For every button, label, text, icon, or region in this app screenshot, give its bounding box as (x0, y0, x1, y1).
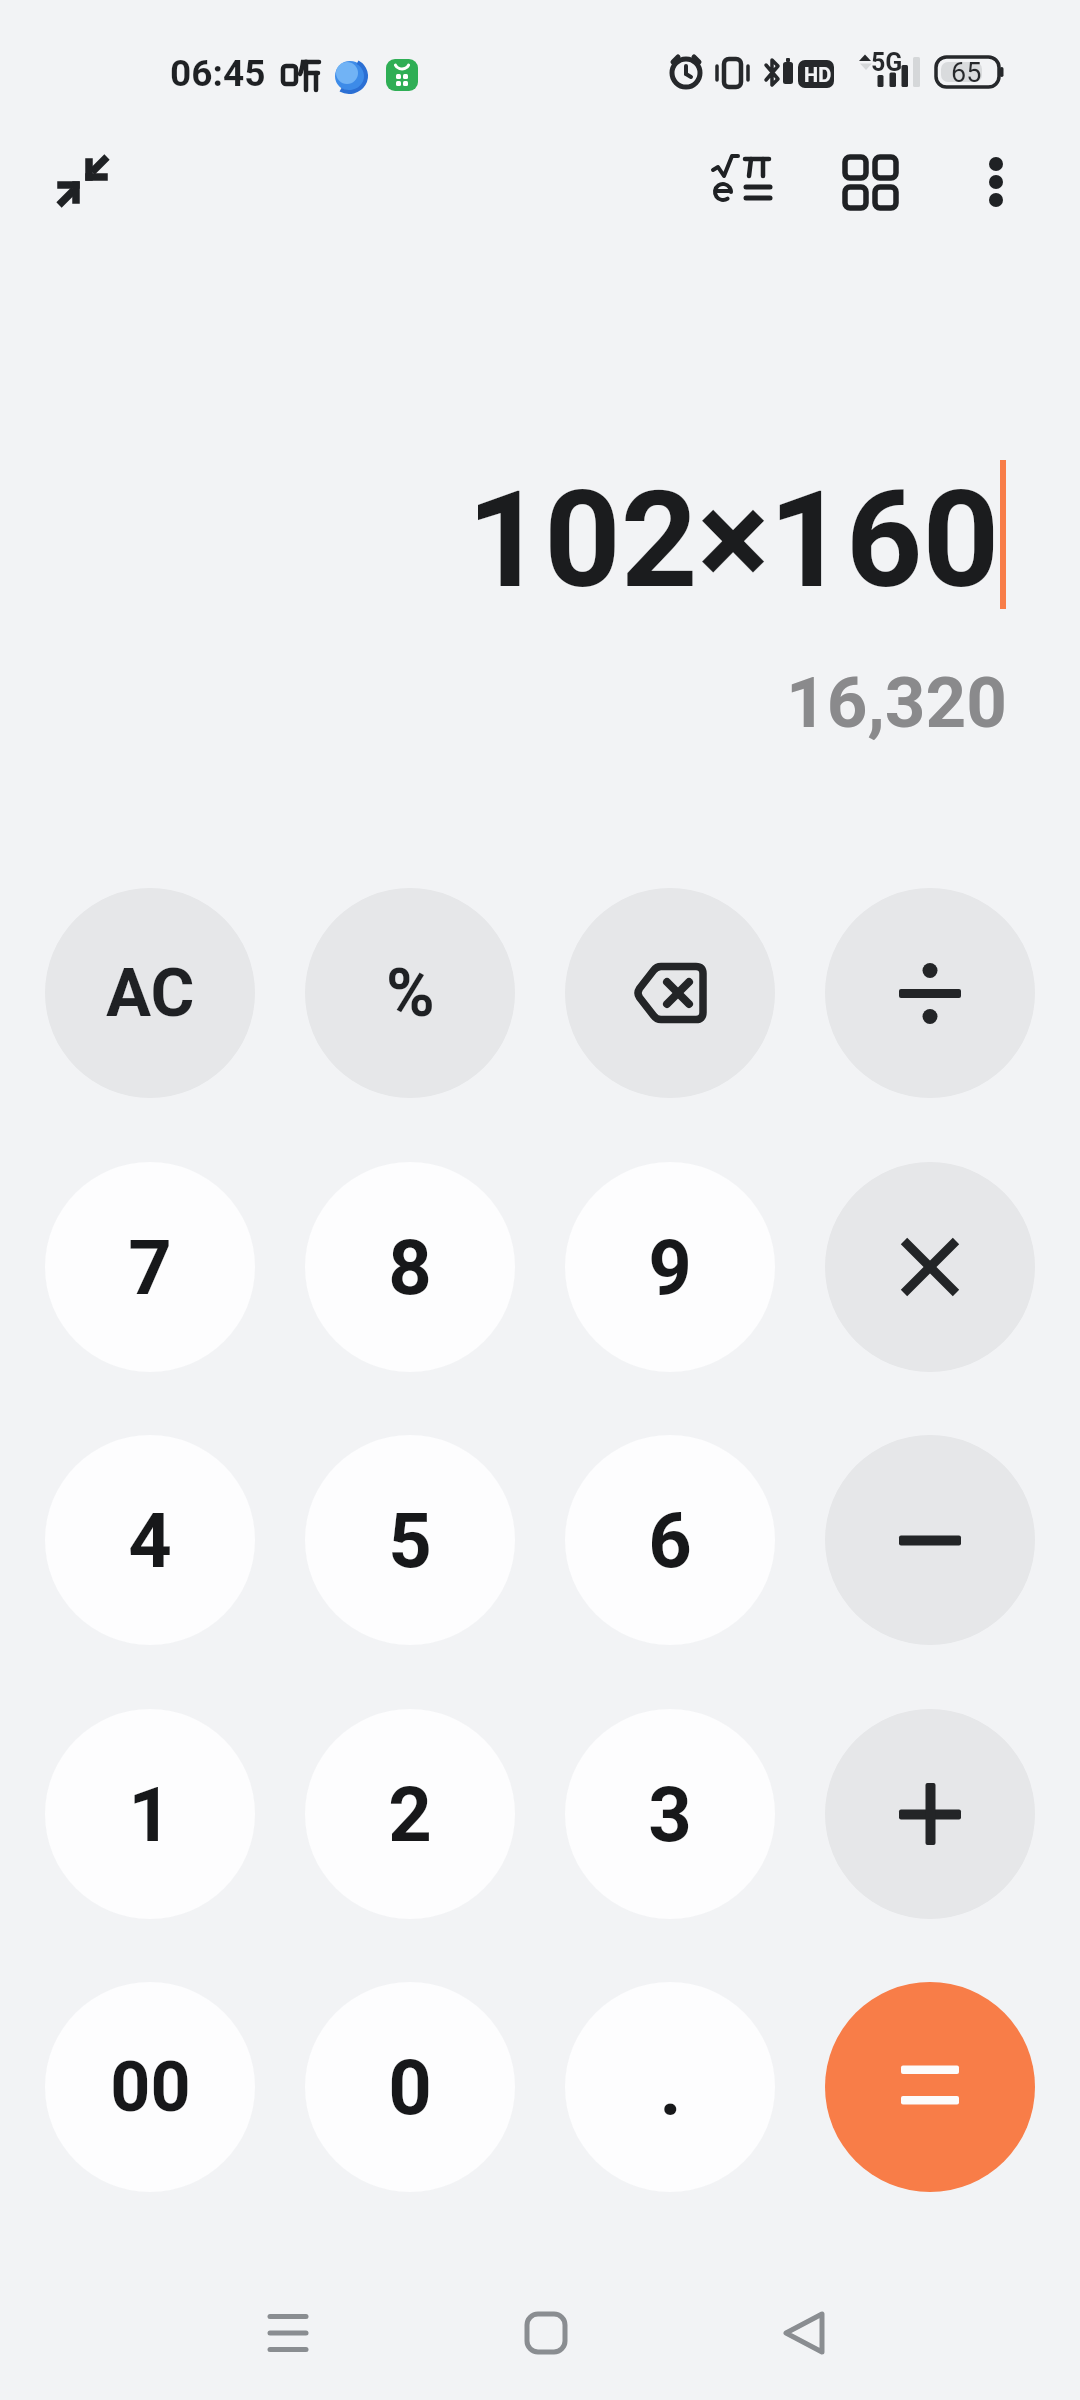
button[interactable]: 00 (45, 1982, 255, 2192)
staticText: 16,320 (786, 661, 1008, 744)
staticText: HD (804, 63, 832, 86)
staticText: 3 (648, 1770, 692, 1859)
button[interactable]: 3 (565, 1709, 775, 1919)
button[interactable] (565, 888, 775, 1098)
button[interactable]: AC (45, 888, 255, 1098)
button[interactable]: 5 (305, 1435, 515, 1645)
button[interactable] (960, 145, 1035, 220)
staticText: % (386, 955, 435, 1032)
button[interactable]: . (565, 1982, 775, 2192)
button[interactable] (766, 2293, 846, 2373)
button[interactable] (825, 1709, 1035, 1919)
staticText: AC (106, 954, 195, 1033)
button[interactable] (825, 888, 1035, 1098)
button[interactable]: 4 (45, 1435, 255, 1645)
button[interactable]: 9 (565, 1162, 775, 1372)
button[interactable] (248, 2293, 328, 2373)
button[interactable] (705, 145, 780, 220)
staticText: 4 (128, 1496, 172, 1585)
staticText: 5 (388, 1496, 432, 1585)
staticText: 9 (648, 1223, 692, 1312)
staticText: 2 (388, 1770, 432, 1859)
staticText: 7 (128, 1223, 172, 1312)
staticText: 06:45 (170, 52, 266, 95)
staticText: . (659, 2043, 682, 2132)
staticText: 8 (388, 1223, 432, 1312)
staticText: 65 (951, 57, 982, 89)
button[interactable]: 6 (565, 1435, 775, 1645)
button[interactable]: 7 (45, 1162, 255, 1372)
staticText: 102×160 (467, 462, 1000, 619)
staticText: 1 (128, 1770, 172, 1859)
button[interactable]: 2 (305, 1709, 515, 1919)
button[interactable]: 8 (305, 1162, 515, 1372)
staticText: 5G (871, 48, 903, 77)
button[interactable]: 0 (305, 1982, 515, 2192)
staticText: 0 (388, 2043, 432, 2132)
button[interactable] (835, 145, 910, 220)
button[interactable]: % (305, 888, 515, 1098)
button[interactable] (506, 2293, 586, 2373)
button[interactable]: 1 (45, 1709, 255, 1919)
button[interactable] (825, 1162, 1035, 1372)
button[interactable] (825, 1982, 1035, 2192)
staticText: 6 (648, 1496, 692, 1585)
button[interactable] (45, 145, 120, 220)
button[interactable] (825, 1435, 1035, 1645)
staticText: 00 (110, 2046, 191, 2128)
